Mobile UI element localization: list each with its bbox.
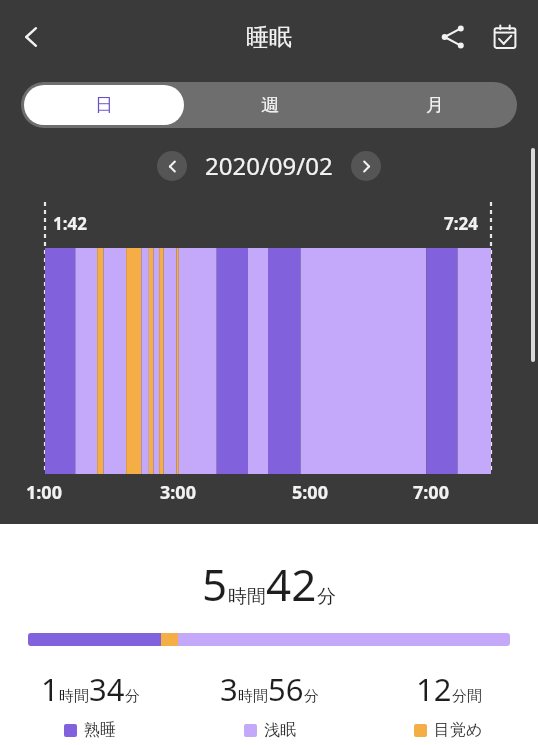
staticText: 7:24 <box>444 212 478 235</box>
staticText: 12 <box>416 668 452 710</box>
staticText: 目覚め <box>434 720 483 740</box>
button[interactable]: Back <box>8 13 56 61</box>
button[interactable]: Previous day <box>157 151 187 181</box>
staticText: 34 <box>89 668 125 710</box>
staticText: 時間 <box>228 585 266 609</box>
staticText: 睡眠 <box>246 23 292 52</box>
staticText: 熟睡 <box>84 720 116 740</box>
staticText: 3:00 <box>160 480 196 505</box>
staticText: 分 <box>304 687 319 706</box>
button[interactable]: Share <box>430 14 476 60</box>
button[interactable]: 12 <box>359 668 538 740</box>
staticText: 42 <box>266 554 317 614</box>
staticText: 日 <box>95 94 113 117</box>
staticText: 1 <box>41 668 59 710</box>
button[interactable]: 月 <box>352 82 517 128</box>
staticText: 分 <box>125 687 140 706</box>
button[interactable]: 日 <box>24 85 184 125</box>
staticText: 時間 <box>238 687 268 706</box>
staticText: 2020/09/02 <box>205 149 333 182</box>
button[interactable]: 1 <box>0 668 180 740</box>
staticText: 5 <box>202 554 228 614</box>
staticText: 1:00 <box>26 480 62 505</box>
staticText: 分 <box>317 585 336 609</box>
button[interactable]: Calendar <box>482 14 528 60</box>
staticText: 月 <box>426 94 444 117</box>
staticText: 浅眠 <box>264 720 296 740</box>
staticText: 56 <box>268 668 304 710</box>
staticText: 時間 <box>59 687 89 706</box>
button[interactable]: 3 <box>180 668 359 740</box>
staticText: 1:42 <box>53 212 87 235</box>
button[interactable]: Next day <box>351 151 381 181</box>
button[interactable]: 週 <box>187 82 352 128</box>
staticText: 週 <box>261 94 279 117</box>
staticText: 5:00 <box>292 480 328 505</box>
staticText: 3 <box>220 668 238 710</box>
staticText: 7:00 <box>413 480 449 505</box>
staticText: 分間 <box>452 687 482 706</box>
